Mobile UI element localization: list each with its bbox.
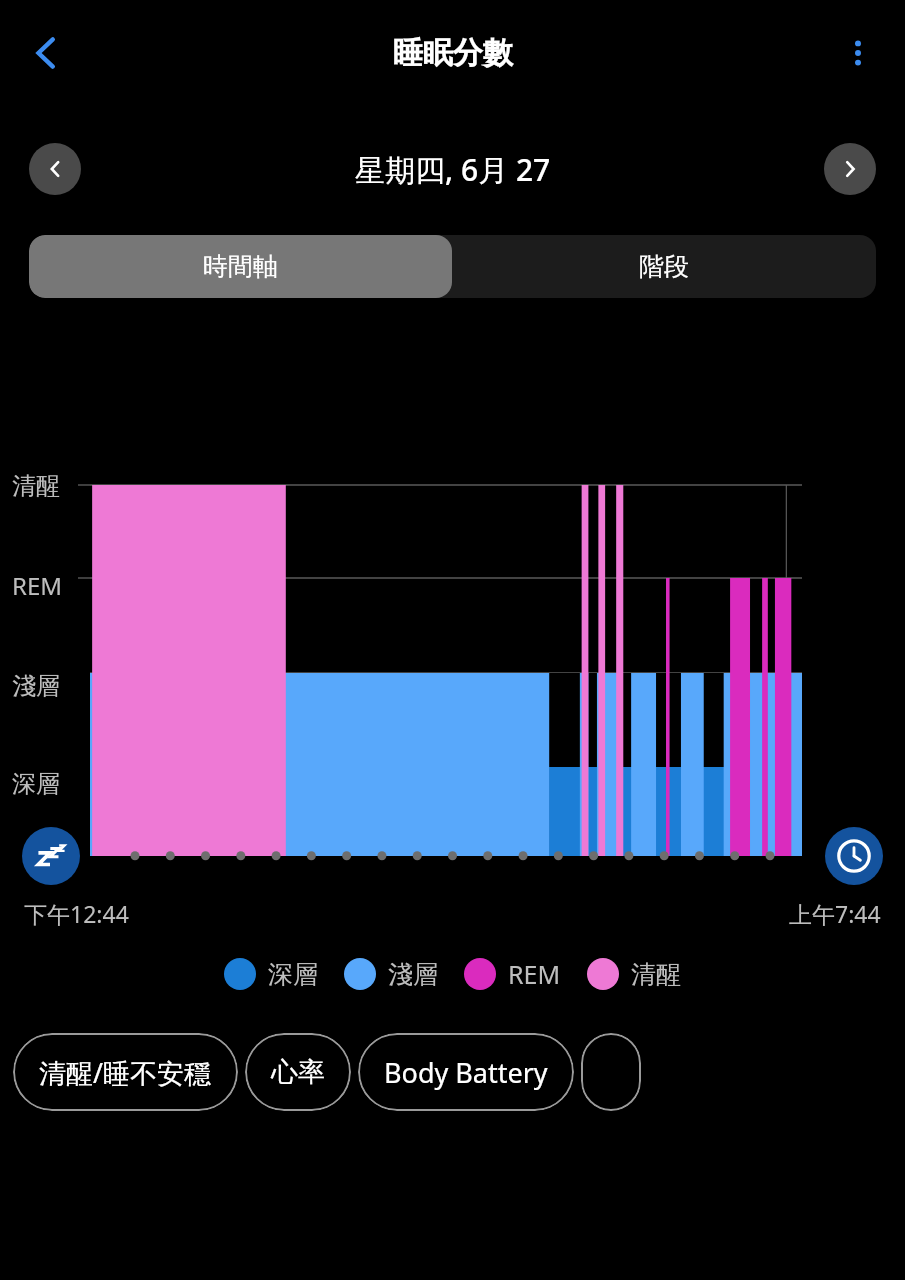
staticText: 心率 bbox=[271, 1055, 325, 1089]
button[interactable]: More metrics bbox=[581, 1033, 641, 1111]
button[interactable]: Sleep start bbox=[22, 827, 80, 885]
button[interactable]: Back bbox=[14, 21, 78, 85]
staticText: 清醒 bbox=[12, 471, 60, 501]
staticText: 清醒 bbox=[631, 959, 681, 990]
staticText: Body Battery bbox=[384, 1054, 548, 1091]
button[interactable]: 階段 bbox=[452, 235, 876, 298]
staticText: 淺層 bbox=[12, 671, 60, 701]
staticText: REM bbox=[508, 957, 561, 991]
button[interactable]: More options bbox=[829, 24, 887, 82]
button[interactable]: Next day bbox=[824, 143, 876, 195]
button[interactable]: Body Battery bbox=[358, 1033, 574, 1111]
staticText: 清醒/睡不安穩 bbox=[39, 1054, 212, 1091]
button[interactable]: Wake time bbox=[825, 827, 883, 885]
staticText: 睡眠分數 bbox=[393, 34, 513, 72]
staticText: 深層 bbox=[12, 769, 60, 799]
staticText: REM bbox=[12, 569, 63, 602]
staticText: 階段 bbox=[639, 251, 689, 282]
staticText: 深層 bbox=[268, 959, 318, 990]
staticText: 星期四, 6月 27 bbox=[355, 149, 551, 190]
staticText: 淺層 bbox=[388, 959, 438, 990]
staticText: 上午7:44 bbox=[789, 898, 881, 929]
staticText: 時間軸 bbox=[203, 251, 278, 282]
button[interactable]: 時間軸 bbox=[29, 235, 452, 298]
button[interactable]: 清醒/睡不安穩 bbox=[13, 1033, 238, 1111]
button[interactable]: 心率 bbox=[245, 1033, 351, 1111]
staticText: 下午12:44 bbox=[24, 898, 129, 929]
button[interactable]: Previous day bbox=[29, 143, 81, 195]
